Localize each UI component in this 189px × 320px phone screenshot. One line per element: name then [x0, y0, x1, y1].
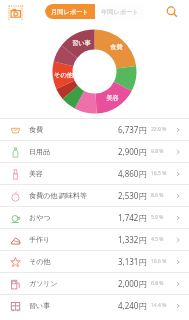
staticText: 6.8 %: [151, 280, 164, 287]
staticText: 日用品: [29, 147, 50, 156]
button[interactable]: 食費: [0, 119, 189, 140]
staticText: 月間レポート: [51, 8, 89, 16]
staticText: 22.9 %: [151, 126, 167, 133]
staticText: 9.8 %: [151, 148, 164, 155]
staticText: 5.9 %: [151, 214, 164, 221]
staticText: 美容: [106, 94, 119, 102]
staticText: 10.6 %: [151, 258, 167, 265]
staticText: 習い事: [72, 39, 91, 47]
button[interactable]: おやつ: [0, 207, 189, 228]
staticText: その他: [29, 257, 51, 266]
button[interactable]: 習い事: [0, 295, 189, 316]
button[interactable]: 手作り: [0, 229, 189, 250]
staticText: 年間レポート: [101, 8, 139, 16]
staticText: 美容: [29, 169, 43, 178]
staticText: 1,742円: [118, 212, 147, 223]
staticText: 食費: [110, 43, 123, 51]
staticText: 4,860円: [118, 168, 147, 179]
button[interactable]: 美容: [0, 163, 189, 184]
staticText: 4.5 %: [151, 236, 164, 243]
staticText: その他: [54, 71, 73, 79]
staticText: 8.6 %: [151, 192, 164, 199]
staticText: 手作り: [29, 235, 51, 244]
button[interactable]: 年間レポート: [95, 4, 145, 19]
staticText: 食費の他 調味料等: [29, 191, 87, 201]
staticText: 16.5 %: [151, 170, 167, 177]
staticText: 1,332円: [118, 234, 147, 245]
button[interactable]: 月間レポート: [45, 4, 95, 19]
staticText: 習い事: [29, 301, 51, 310]
button[interactable]: ガソリン: [0, 273, 189, 294]
staticText: 2,900円: [118, 146, 147, 157]
staticText: ガソリン: [29, 279, 58, 288]
staticText: 2,530円: [118, 190, 147, 201]
staticText: 6,737円: [118, 124, 147, 135]
button[interactable]: その他: [0, 251, 189, 272]
staticText: 4,240円: [118, 300, 147, 311]
staticText: 14.4 %: [151, 302, 167, 309]
button[interactable]: 日用品: [0, 141, 189, 162]
staticText: 2,000円: [118, 278, 147, 289]
button[interactable]: 食費の他 調味料等: [0, 185, 189, 206]
staticText: おやつ: [29, 213, 51, 222]
button[interactable]: Receipt camera: [5, 2, 25, 22]
staticText: 3,131円: [118, 256, 147, 267]
staticText: 食費: [29, 125, 43, 134]
button[interactable]: Search: [162, 2, 182, 22]
